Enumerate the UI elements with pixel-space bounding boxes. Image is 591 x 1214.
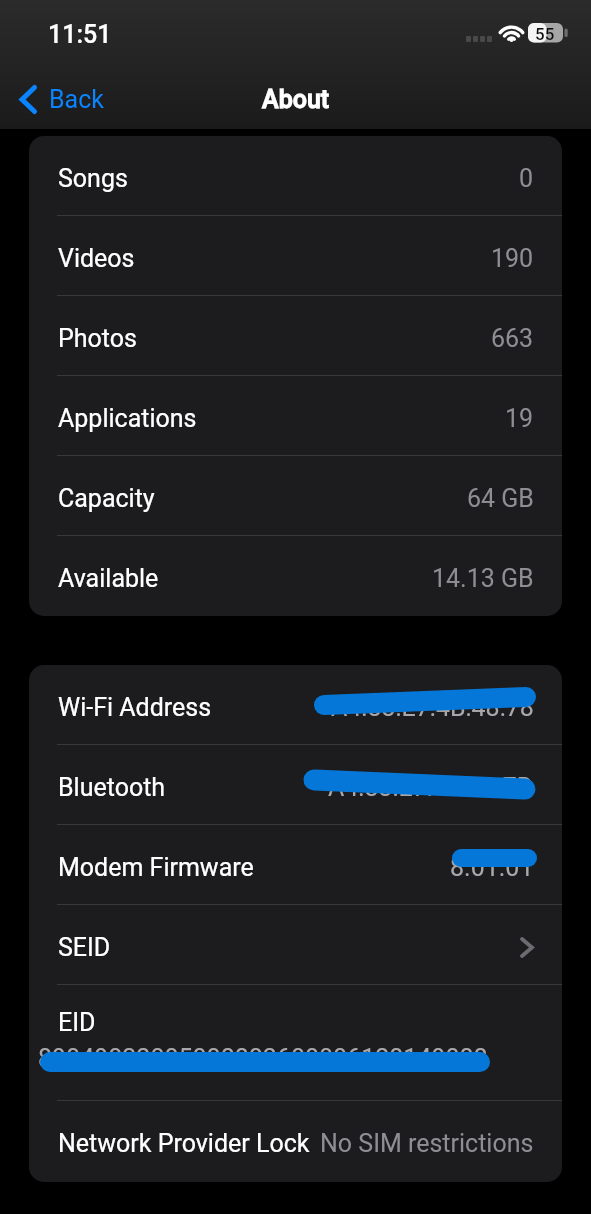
button[interactable]: Photos [29, 296, 562, 376]
button[interactable]: Network Provider Lock [29, 1101, 562, 1182]
button[interactable]: SEID [29, 905, 562, 985]
staticText: 89049032005008882600006128149088 [38, 1044, 488, 1073]
staticText: Modem Firmware [58, 853, 254, 882]
button[interactable]: EID [29, 985, 562, 1101]
button[interactable]: Available [29, 536, 562, 616]
staticText: SEID [58, 933, 111, 962]
staticText: Videos [58, 244, 135, 273]
staticText: 0 [519, 164, 534, 193]
staticText: 19 [505, 404, 534, 433]
staticText: 64 GB [467, 484, 534, 513]
staticText: 11:51 [48, 20, 112, 49]
button[interactable]: Bluetooth [29, 745, 562, 825]
staticText: 55 [535, 24, 555, 44]
staticText: About [262, 85, 330, 114]
staticText: 663 [491, 324, 534, 353]
button[interactable]: Applications [29, 376, 562, 456]
staticText: 14.13 GB [432, 564, 534, 593]
staticText: EID [58, 1008, 96, 1037]
other: SEID details [520, 937, 534, 958]
staticText: Songs [58, 164, 128, 193]
staticText: Available [58, 564, 159, 593]
staticText: A4:83:E7:4B:48:78 [331, 693, 534, 722]
button[interactable]: Videos [29, 216, 562, 296]
staticText: Back [49, 85, 104, 114]
staticText: Network Provider Lock [58, 1129, 310, 1158]
staticText: Photos [58, 324, 137, 353]
button[interactable]: Capacity [29, 456, 562, 536]
staticText: Bluetooth [58, 773, 166, 802]
staticText: A4:83:E7:4B:48:7D [328, 773, 534, 802]
button[interactable]: Songs [29, 136, 562, 216]
staticText: Wi-Fi Address [58, 693, 212, 722]
staticText: 8.01.01 [450, 853, 534, 882]
button[interactable]: Back [19, 73, 104, 125]
staticText: No SIM restrictions [320, 1129, 534, 1158]
staticText: Capacity [58, 484, 155, 513]
staticText: Applications [58, 404, 197, 433]
button[interactable]: Modem Firmware [29, 825, 562, 905]
button[interactable]: Wi-Fi Address [29, 665, 562, 745]
staticText: 190 [491, 244, 534, 273]
